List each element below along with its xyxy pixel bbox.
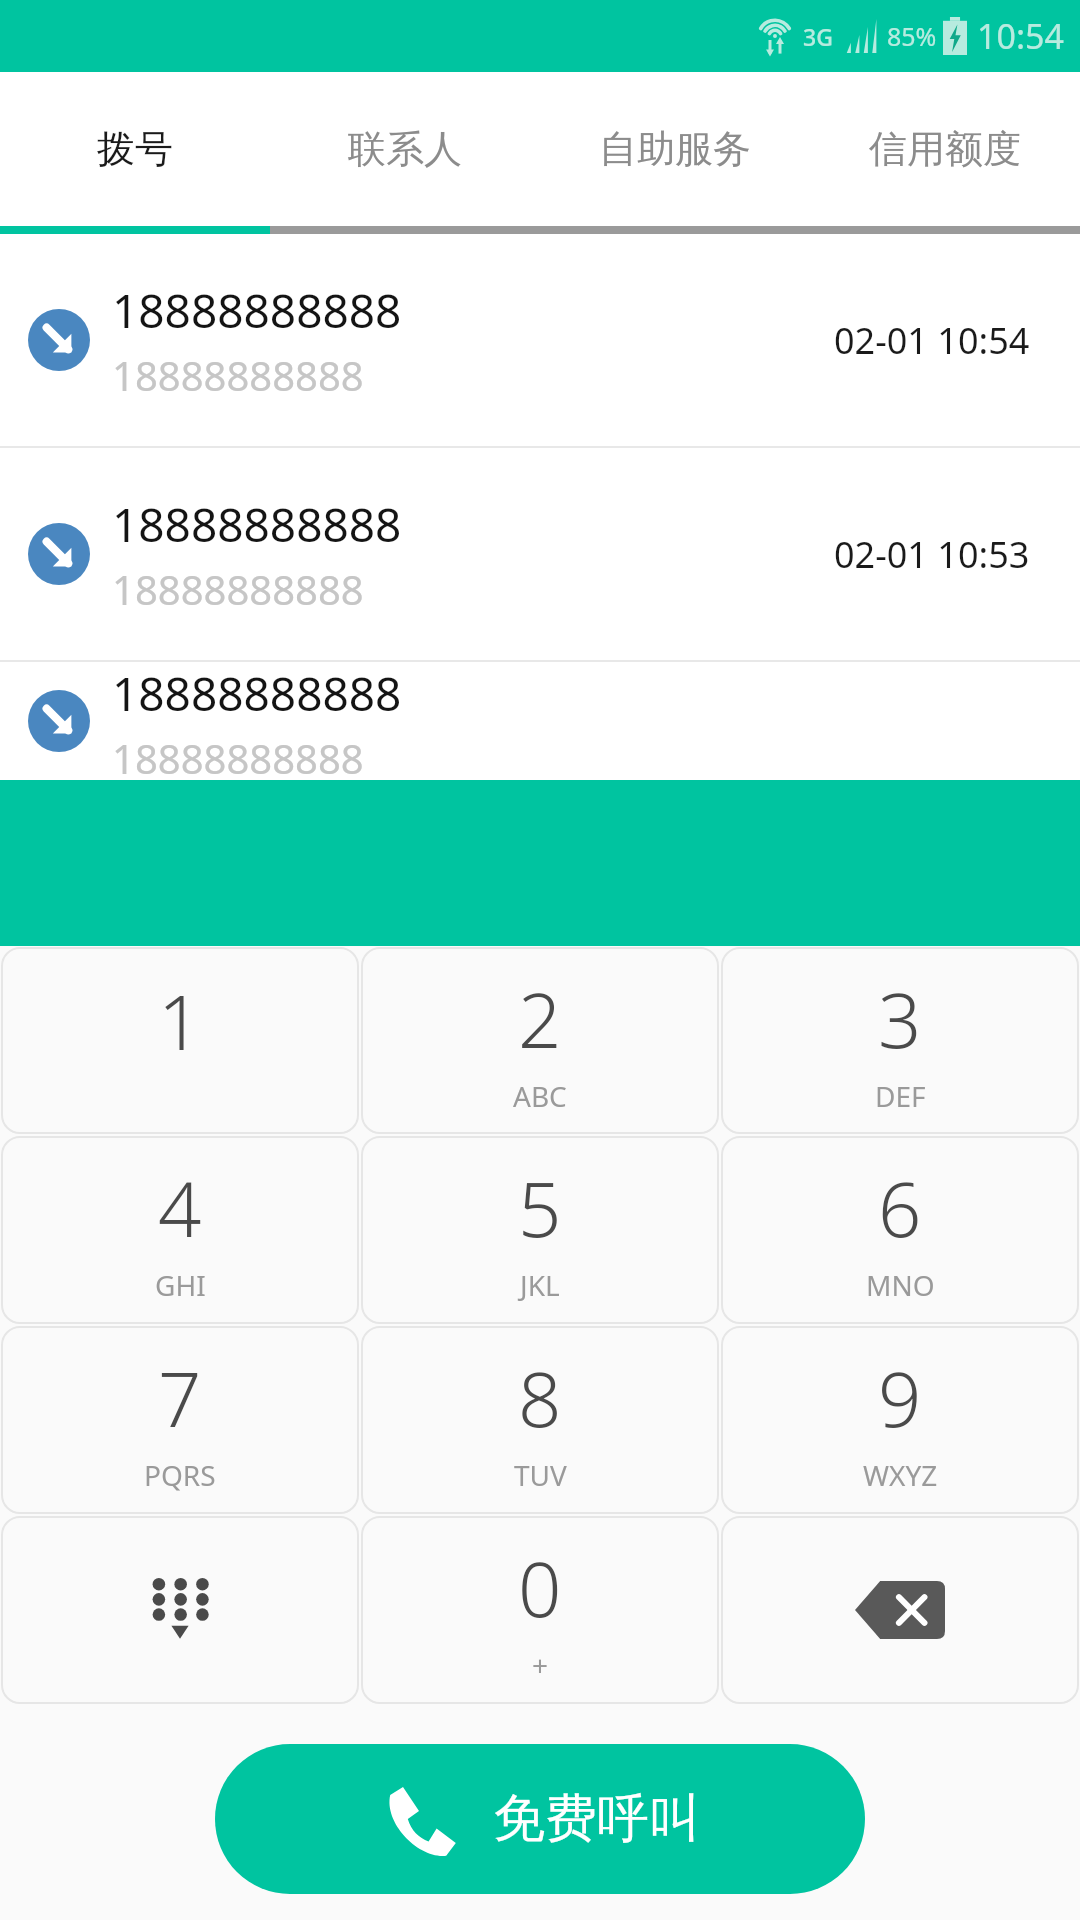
staticText: JKL: [520, 1266, 560, 1304]
staticText: MNO: [866, 1266, 935, 1304]
staticText: 3G: [803, 21, 833, 52]
staticText: 18888888888: [112, 731, 364, 780]
staticText: 18888888888: [112, 662, 402, 725]
staticText: 0: [518, 1536, 562, 1640]
button[interactable]: 信用额度: [810, 72, 1080, 226]
staticText: 18888888888: [112, 279, 402, 342]
staticText: +: [532, 1646, 549, 1684]
staticText: 5: [518, 1156, 562, 1260]
staticText: 6: [878, 1156, 922, 1260]
staticText: 18888888888: [112, 562, 364, 616]
staticText: TUV: [514, 1456, 567, 1494]
button[interactable]: 免费呼叫: [215, 1744, 865, 1894]
staticText: 3: [878, 967, 922, 1071]
staticText: 信用额度: [869, 125, 1021, 173]
button[interactable]: 8: [360, 1325, 720, 1515]
staticText: 免费呼叫: [493, 1786, 701, 1852]
button[interactable]: Backspace: [720, 1515, 1080, 1705]
button[interactable]: 4: [0, 1135, 360, 1325]
button[interactable]: 联系人: [270, 72, 540, 226]
staticText: DEF: [875, 1077, 926, 1115]
staticText: ABC: [513, 1077, 567, 1115]
staticText: 02-01 10:54: [834, 316, 1030, 365]
staticText: 拨号: [97, 125, 173, 173]
button[interactable]: 拨号: [0, 72, 270, 226]
staticText: WXYZ: [863, 1456, 938, 1494]
staticText: 联系人: [348, 125, 462, 173]
button[interactable]: 1: [0, 946, 360, 1135]
staticText: 4: [158, 1156, 202, 1260]
staticText: 8: [518, 1346, 562, 1450]
button[interactable]: 7: [0, 1325, 360, 1515]
staticText: 02-01 10:53: [834, 530, 1030, 579]
button[interactable]: 3: [720, 946, 1080, 1135]
button[interactable]: 9: [720, 1325, 1080, 1515]
button[interactable]: 0: [360, 1515, 720, 1705]
staticText: 7: [158, 1346, 202, 1450]
staticText: 自助服务: [599, 125, 751, 173]
button[interactable]: 18888888888: [0, 234, 1080, 446]
staticText: 9: [878, 1346, 922, 1450]
staticText: 2: [518, 967, 562, 1071]
staticText: 18888888888: [112, 493, 402, 556]
button[interactable]: Hide keypad: [0, 1515, 360, 1705]
staticText: GHI: [155, 1266, 206, 1304]
staticText: 1: [158, 969, 202, 1073]
button[interactable]: 5: [360, 1135, 720, 1325]
button[interactable]: 2: [360, 946, 720, 1135]
button[interactable]: 18888888888: [0, 662, 1080, 780]
staticText: 18888888888: [112, 348, 364, 402]
button[interactable]: 自助服务: [540, 72, 810, 226]
button[interactable]: 18888888888: [0, 448, 1080, 660]
staticText: PQRS: [144, 1456, 216, 1494]
staticText: 10:54: [977, 13, 1064, 59]
button[interactable]: 6: [720, 1135, 1080, 1325]
staticText: 85%: [887, 19, 937, 53]
